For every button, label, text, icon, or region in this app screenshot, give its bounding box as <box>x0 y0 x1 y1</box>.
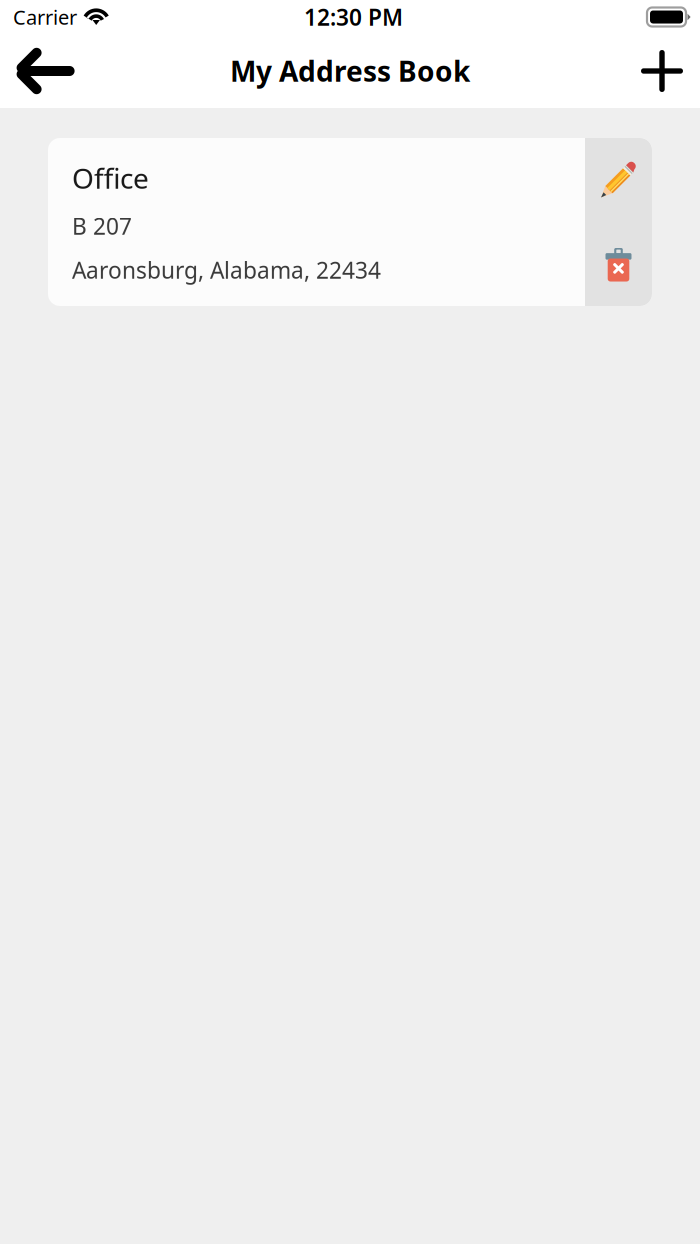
staticText: B 207 <box>72 211 132 241</box>
staticText: Carrier <box>13 4 77 30</box>
button[interactable]: Back <box>10 40 75 102</box>
staticText: Office <box>72 159 149 197</box>
button[interactable]: Delete address <box>585 222 652 306</box>
staticText: My Address Book <box>230 52 470 90</box>
staticText: Aaronsburg, Alabama, 22434 <box>72 255 381 285</box>
staticText: 12:30 PM <box>304 2 403 32</box>
button[interactable]: Office <box>48 138 585 306</box>
button[interactable]: Add address <box>631 40 690 102</box>
button[interactable]: Edit address <box>585 138 652 222</box>
